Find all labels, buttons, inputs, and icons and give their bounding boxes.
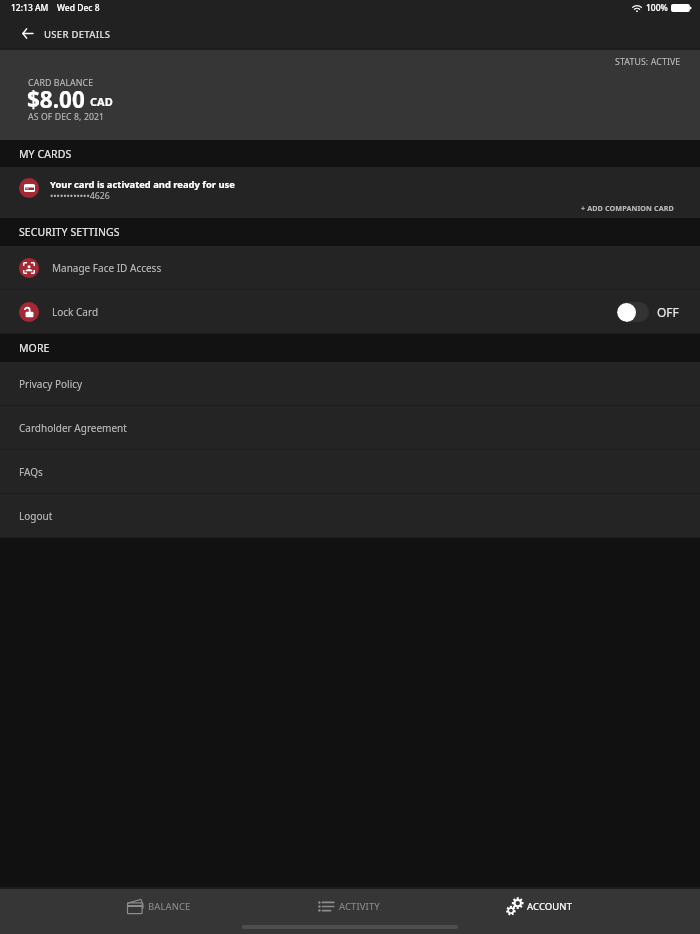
staticText: ACTIVITY xyxy=(339,900,380,913)
staticText: STATUS: ACTIVE xyxy=(615,56,681,68)
button[interactable]: Privacy Policy xyxy=(0,362,700,406)
staticText: Your card is activated and ready for use xyxy=(50,178,235,191)
button[interactable]: Back xyxy=(0,18,44,48)
staticText: SECURITY SETTINGS xyxy=(19,225,120,239)
button[interactable]: + ADD COMPANION CARD xyxy=(581,203,674,213)
staticText: ••••••••••••4626 xyxy=(50,190,110,202)
button[interactable]: Lock Card xyxy=(0,290,700,334)
staticText: FAQs xyxy=(19,465,43,479)
button[interactable]: ACTIVITY xyxy=(318,887,380,925)
button[interactable]: ACCOUNT xyxy=(506,887,573,925)
button[interactable]: FAQs xyxy=(0,450,700,494)
staticText: OFF xyxy=(657,304,679,320)
button[interactable]: Logout xyxy=(0,494,700,538)
button[interactable]: Manage Face ID Access xyxy=(0,246,700,290)
staticText: Cardholder Agreement xyxy=(19,421,127,435)
staticText: Logout xyxy=(19,509,53,523)
staticText: CARD BALANCE xyxy=(28,77,94,89)
staticText: Wed Dec 8 xyxy=(57,2,100,14)
staticText: Privacy Policy xyxy=(19,377,83,391)
staticText: AS OF DEC 8, 2021 xyxy=(28,111,105,123)
staticText: 100% xyxy=(646,2,668,14)
staticText: + ADD COMPANION CARD xyxy=(581,203,674,213)
staticText: USER DETAILS xyxy=(44,28,111,41)
button[interactable]: BALANCE xyxy=(127,887,191,925)
staticText: BALANCE xyxy=(148,900,191,913)
button[interactable]: Cardholder Agreement xyxy=(0,406,700,450)
staticText: MY CARDS xyxy=(19,147,72,161)
button[interactable]: Lock card toggle xyxy=(617,302,649,322)
staticText: Lock Card xyxy=(52,305,99,319)
button[interactable]: Your card is activated and ready for use xyxy=(0,167,700,218)
staticText: MORE xyxy=(19,341,50,355)
staticText: $8.00 xyxy=(27,84,85,115)
staticText: CAD xyxy=(90,94,113,109)
staticText: Manage Face ID Access xyxy=(52,261,162,275)
staticText: 12:13 AM xyxy=(11,2,49,14)
staticText: ACCOUNT xyxy=(527,900,573,913)
